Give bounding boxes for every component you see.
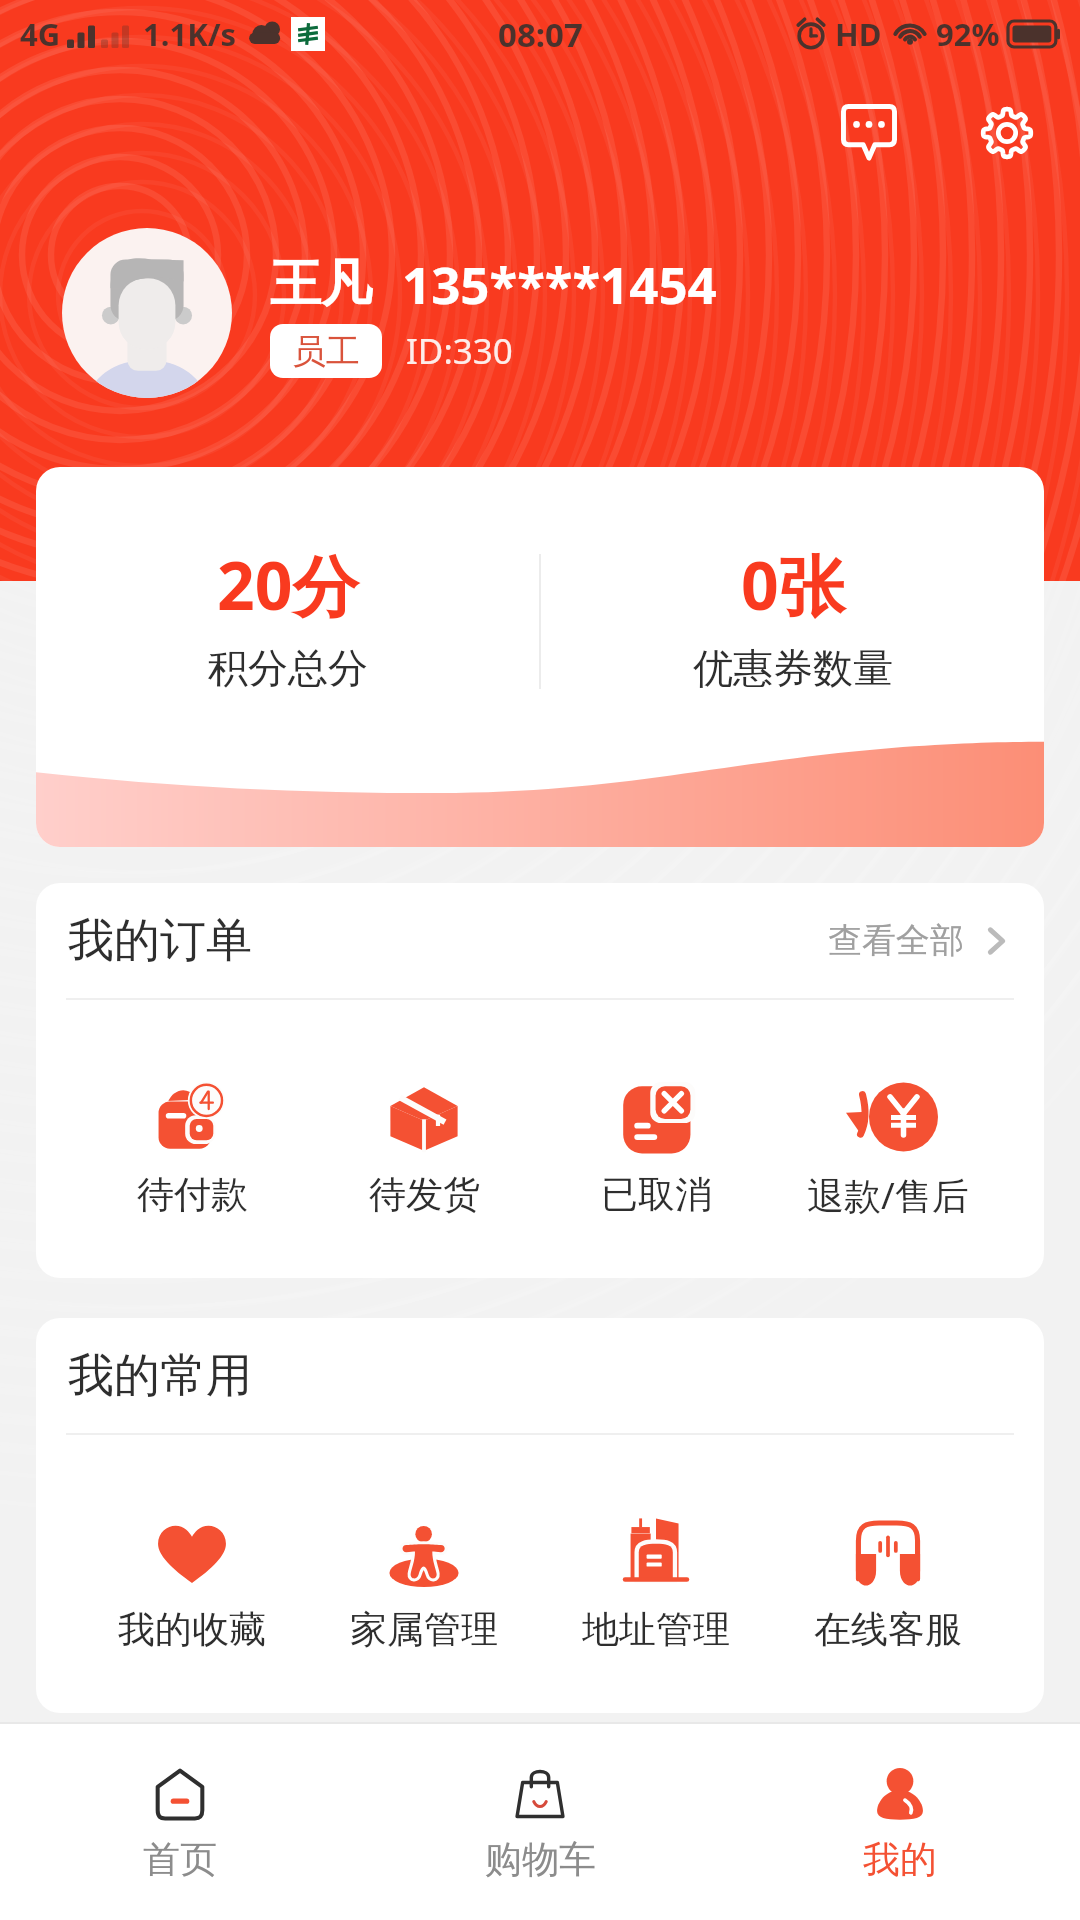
button[interactable]: 我的收藏	[76, 1435, 308, 1713]
staticText: 地址管理	[582, 1606, 730, 1653]
staticText: 王凡	[270, 252, 372, 316]
staticText: 4G	[20, 13, 61, 55]
button[interactable]: 待发货	[308, 1000, 540, 1278]
staticText: 08:07	[498, 12, 583, 57]
staticText: 在线客服	[814, 1606, 962, 1653]
staticText: 我的常用	[68, 1347, 252, 1405]
staticText: 1.1K/s	[143, 13, 237, 55]
button[interactable]: 退款/售后	[772, 1000, 1004, 1278]
staticText: 0张	[741, 539, 845, 629]
button[interactable]: 家属管理	[308, 1435, 540, 1713]
button[interactable]: 首页	[0, 1724, 360, 1920]
button[interactable]: 地址管理	[540, 1435, 772, 1713]
staticText: 购物车	[485, 1836, 596, 1883]
staticText: 我的收藏	[118, 1606, 266, 1653]
staticText: 查看全部	[828, 919, 964, 962]
button[interactable]: 购物车	[360, 1724, 720, 1920]
staticText: 20分	[217, 539, 359, 629]
button[interactable]: 我的订单	[36, 883, 1044, 998]
staticText: 我的订单	[68, 912, 252, 970]
button[interactable]: 在线客服	[772, 1435, 1004, 1713]
staticText: 员工	[292, 330, 360, 373]
staticText: 待发货	[369, 1171, 480, 1218]
staticText: 积分总分	[208, 643, 368, 693]
staticText: 待付款	[137, 1171, 248, 1218]
button[interactable]: Profile photo	[62, 228, 232, 398]
staticText: HD	[835, 13, 882, 55]
button[interactable]: Messages	[814, 77, 924, 187]
button[interactable]: Settings	[952, 78, 1062, 188]
button[interactable]: 已取消	[540, 1000, 772, 1278]
button[interactable]: 我的	[720, 1724, 1080, 1920]
staticText: 已取消	[601, 1171, 712, 1218]
staticText: 首页	[143, 1836, 217, 1883]
staticText: ID:330	[406, 327, 513, 375]
staticText: 92%	[936, 13, 1000, 55]
staticText: 优惠券数量	[693, 643, 893, 693]
staticText: 135****1454	[402, 249, 717, 318]
staticText: 我的	[863, 1836, 937, 1883]
staticText: 家属管理	[350, 1606, 498, 1653]
button[interactable]: 待付款	[76, 1000, 308, 1278]
staticText: 退款/售后	[807, 1169, 969, 1220]
